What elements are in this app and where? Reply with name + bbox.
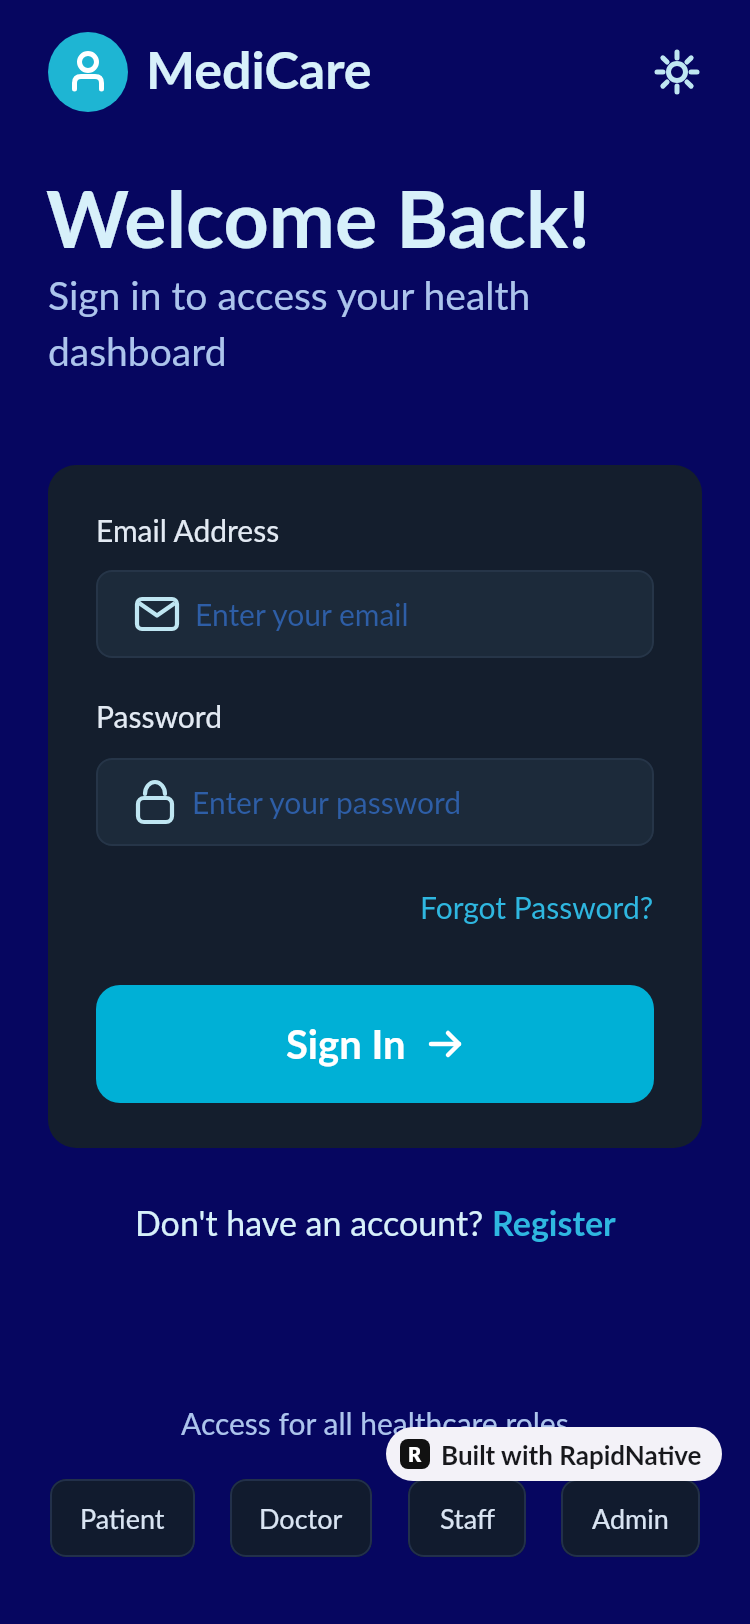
staticText: MediCare	[146, 38, 372, 100]
staticText: R	[408, 1442, 422, 1466]
staticText: Don't have an account? Register	[135, 1202, 616, 1243]
button[interactable]: R	[386, 1427, 722, 1481]
staticText: Access for all healthcare roles	[181, 1405, 569, 1441]
button[interactable]: Enter your password	[96, 758, 654, 846]
button[interactable]	[48, 32, 128, 112]
staticText: Patient	[80, 1502, 165, 1534]
button[interactable]: Don't have an account? Register	[0, 1202, 750, 1243]
button[interactable]: Doctor	[230, 1479, 372, 1557]
button[interactable]: Forgot Password?	[420, 889, 654, 925]
staticText: Admin	[592, 1502, 669, 1534]
staticText: Password	[96, 698, 222, 734]
button[interactable]: Sign In	[96, 985, 654, 1103]
button[interactable]: Enter your email	[96, 570, 654, 658]
staticText: Welcome Back!	[46, 170, 591, 265]
button[interactable]: Patient	[50, 1479, 195, 1557]
staticText: Email Address	[96, 512, 280, 548]
button[interactable]: Admin	[561, 1479, 700, 1557]
button[interactable]	[653, 48, 701, 96]
staticText: Doctor	[259, 1502, 343, 1534]
staticText: Enter your password	[192, 784, 462, 820]
staticText: Built with RapidNative	[441, 1439, 702, 1470]
staticText: Sign in to access your health dashboard	[48, 272, 531, 374]
staticText: Enter your email	[195, 596, 409, 632]
staticText: Sign In	[286, 1020, 406, 1068]
button[interactable]: Staff	[408, 1479, 526, 1557]
staticText: Staff	[440, 1502, 495, 1534]
